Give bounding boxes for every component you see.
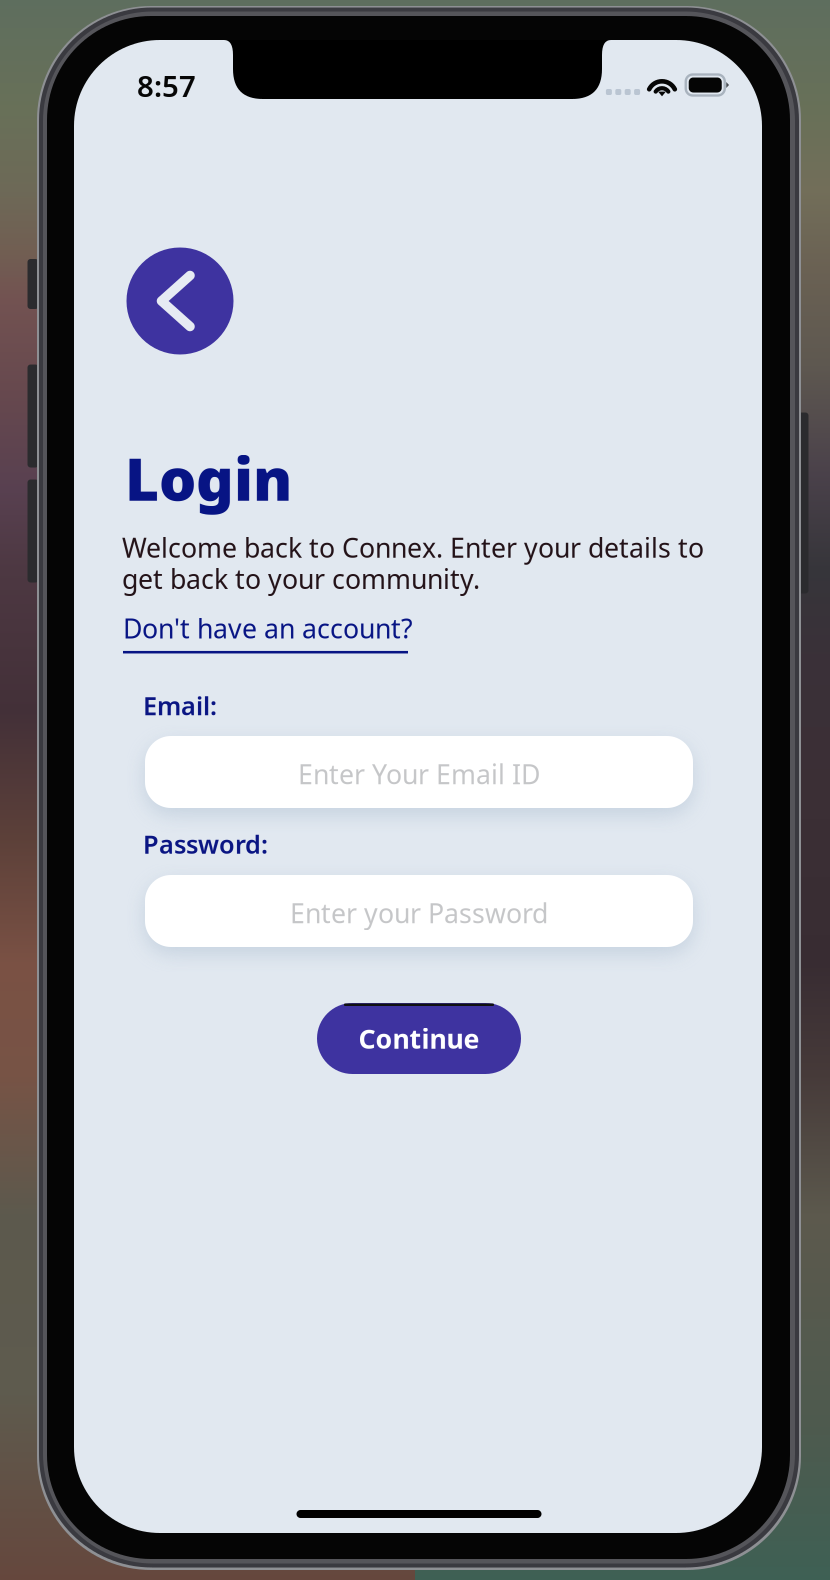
button[interactable]: Don't have an account? [123,610,413,653]
button[interactable]: Enter Your Email ID [145,736,693,808]
staticText: Don't have an account? [123,610,413,646]
button[interactable]: Continue [317,1003,521,1074]
staticText: Welcome back to Connex. Enter your detai… [122,530,704,596]
staticText: Enter Your Email ID [298,756,540,792]
staticText: Continue [358,1021,479,1056]
button[interactable]: Enter your Password [145,875,693,947]
staticText: Password: [143,827,268,861]
staticText: 8:57 [137,66,196,105]
staticText: Login [125,439,292,517]
staticText: Enter your Password [290,895,548,931]
button[interactable]: Back [126,247,233,354]
staticText: Email: [143,689,217,722]
